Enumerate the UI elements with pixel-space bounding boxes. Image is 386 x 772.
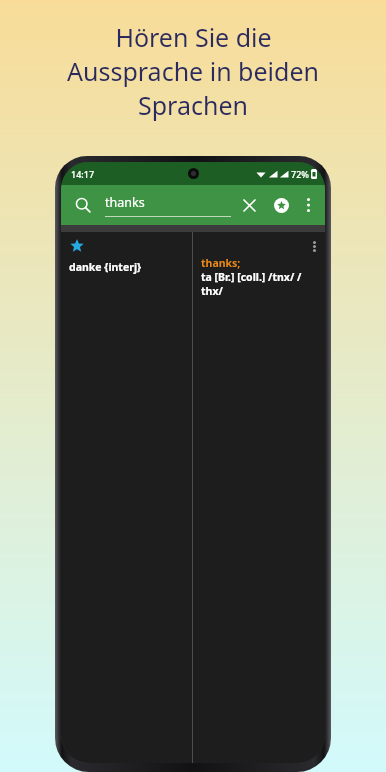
button[interactable]: Bookmarked (61, 232, 325, 763)
staticText: 72% (291, 168, 309, 180)
button[interactable]: Search (73, 195, 93, 215)
button[interactable]: Bookmarked (69, 238, 85, 254)
staticText: Aussprache in beiden (67, 54, 319, 88)
button[interactable]: Clear (237, 193, 261, 217)
button[interactable]: Favourites (269, 193, 293, 217)
staticText: thanks (105, 194, 145, 211)
staticText: ta [Br.] [coll.] /tnx/ /thx/ (201, 270, 321, 298)
staticText: Sprachen (138, 88, 248, 122)
staticText: thanks; (201, 256, 241, 270)
staticText: danke {interj} (69, 260, 142, 274)
button[interactable]: Entry options (307, 238, 321, 254)
staticText: Hören Sie die (115, 20, 272, 54)
staticText: 14:17 (71, 168, 95, 180)
button[interactable]: More options (297, 194, 319, 216)
